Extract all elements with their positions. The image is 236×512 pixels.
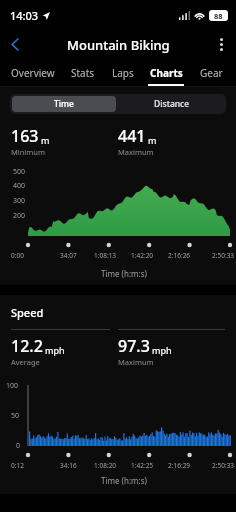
button[interactable]: Stats [62,59,104,86]
staticText: 0:12 [11,461,24,470]
staticText: Average [11,357,40,367]
staticText: 1:08:20 [94,461,117,470]
staticText: 2:16:26 [168,251,191,260]
staticText: Distance [154,98,190,110]
staticText: 0:00 [11,251,24,260]
button[interactable]: Time [12,96,116,112]
staticText: Time (h:m:s) [101,268,147,279]
staticText: 34:07 [60,251,77,260]
staticText: mph [152,344,172,356]
button[interactable]: Gear [190,59,233,86]
button[interactable]: Overview [3,59,62,86]
staticText: 1:42:25 [131,461,154,470]
staticText: Speed [11,305,44,320]
button[interactable]: Laps [104,59,142,86]
button[interactable]: Charts [142,59,190,86]
staticText: 441 [118,125,146,147]
staticText: m [148,134,157,146]
staticText: 300 [13,196,26,206]
staticText: 500 [13,167,26,177]
staticText: Gear [200,66,223,80]
staticText: 400 [13,181,26,191]
staticText: Time (h:m:s) [101,475,147,486]
staticText: 0 [16,441,21,451]
staticText: 2:16:29 [168,461,191,470]
staticText: Time [54,98,75,110]
staticText: 34:16 [60,461,77,470]
button[interactable]: Distance [120,96,224,112]
button[interactable]: Back [0,30,30,59]
staticText: 200 [13,211,26,221]
staticText: 163 [11,125,39,147]
staticText: 97.3 [118,335,150,357]
staticText: Maximum [118,357,154,367]
staticText: 1:42:20 [131,251,154,260]
staticText: 100 [6,381,19,391]
staticText: 2:50:33 [212,251,235,260]
staticText: Laps [112,66,134,80]
staticText: Mountain Biking [67,36,170,54]
staticText: 14:03 [10,8,39,23]
staticText: 1:08:13 [94,251,117,260]
button[interactable]: More options [206,30,236,59]
staticText: 2:50:33 [212,461,235,470]
staticText: mph [45,344,65,356]
staticText: 50 [11,411,20,421]
staticText: m [41,134,50,146]
staticText: 88 [214,11,223,21]
staticText: 12.2 [11,335,43,357]
staticText: Maximum [118,147,154,157]
staticText: Stats [71,66,95,80]
staticText: Overview [11,66,55,80]
staticText: Charts [150,66,183,80]
staticText: Minimum [11,147,45,157]
